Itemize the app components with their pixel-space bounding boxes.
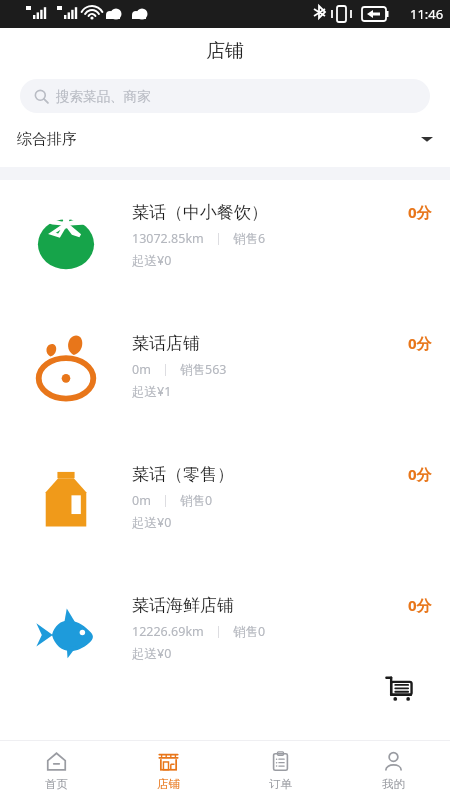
staticText: 销售0 <box>233 623 266 640</box>
staticText: 菜话（中小餐饮） <box>132 202 268 223</box>
staticText: 订单 <box>269 777 292 791</box>
button[interactable]: 菜话店铺 <box>0 311 450 442</box>
button[interactable]: 我的 <box>337 741 450 800</box>
staticText: 销售6 <box>233 230 266 247</box>
staticText: 起送¥0 <box>132 645 172 662</box>
button[interactable]: 搜索菜品、商家 <box>20 79 430 113</box>
button[interactable]: 菜话（中小餐饮） <box>0 180 450 311</box>
staticText: 0分 <box>408 333 432 353</box>
staticText: 菜话（零售） <box>132 464 234 485</box>
staticText: 首页 <box>45 777 68 791</box>
button[interactable]: 店铺 <box>112 741 224 800</box>
staticText: 0m <box>132 361 151 378</box>
button[interactable]: 菜话海鲜店铺 <box>0 573 450 704</box>
staticText: 销售0 <box>180 492 213 509</box>
button[interactable]: 综合排序 <box>0 118 450 160</box>
staticText: 搜索菜品、商家 <box>56 88 151 105</box>
staticText: 菜话店铺 <box>132 333 200 354</box>
staticText: 店铺 <box>206 39 244 63</box>
staticText: 菜话海鲜店铺 <box>132 595 234 616</box>
button[interactable]: Shopping cart <box>369 657 431 719</box>
staticText: 销售563 <box>180 361 227 378</box>
staticText: 综合排序 <box>17 130 77 149</box>
button[interactable]: 订单 <box>224 741 337 800</box>
staticText: 起送¥0 <box>132 514 172 531</box>
staticText: 0分 <box>408 464 432 484</box>
staticText: 起送¥0 <box>132 252 172 269</box>
staticText: 0m <box>132 492 151 509</box>
staticText: 11:46 <box>410 5 444 23</box>
staticText: 起送¥1 <box>132 383 172 400</box>
staticText: 0分 <box>408 595 432 615</box>
staticText: 我的 <box>382 777 405 791</box>
staticText: 店铺 <box>157 777 180 791</box>
staticText: 0分 <box>408 202 432 222</box>
staticText: 13072.85km <box>132 230 204 247</box>
button[interactable]: 菜话（零售） <box>0 442 450 573</box>
button[interactable]: 首页 <box>0 741 112 800</box>
staticText: 12226.69km <box>132 623 204 640</box>
